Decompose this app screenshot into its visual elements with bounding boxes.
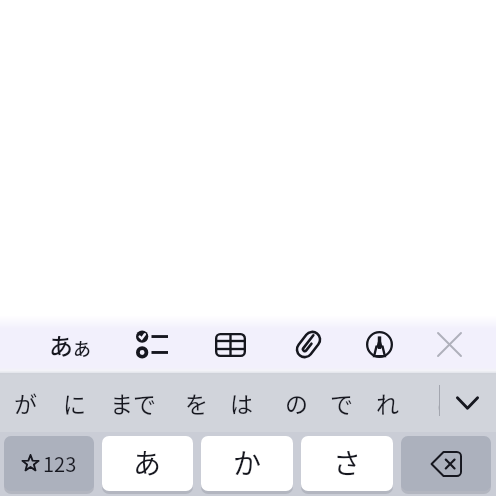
button[interactable]: Attach	[270, 316, 346, 373]
button[interactable]: Backspace	[401, 436, 491, 491]
button[interactable]: で	[321, 373, 361, 432]
button[interactable]: れ	[367, 373, 407, 432]
button[interactable]: Markup	[341, 316, 417, 373]
staticText: を	[185, 386, 208, 419]
button[interactable]: Close	[411, 316, 487, 373]
staticText: に	[63, 386, 86, 419]
button[interactable]: に	[54, 373, 94, 432]
button[interactable]: さ	[301, 436, 393, 491]
button[interactable]: か	[201, 436, 293, 491]
staticText: れ	[376, 386, 399, 419]
staticText: が	[14, 386, 37, 419]
button[interactable]: あ	[102, 436, 193, 491]
button[interactable]: を	[176, 373, 216, 432]
staticText: の	[285, 386, 308, 419]
staticText: 123	[43, 449, 77, 478]
button[interactable]: まで	[105, 373, 161, 432]
button[interactable]: Symbols and numbers	[4, 436, 94, 491]
staticText: か	[233, 442, 262, 483]
button[interactable]: Text format	[32, 316, 108, 373]
button[interactable]: Table	[192, 316, 268, 373]
staticText: まで	[110, 386, 156, 419]
staticText: は	[230, 386, 253, 419]
button[interactable]: More suggestions	[441, 373, 493, 432]
staticText: で	[330, 386, 353, 419]
staticText: に	[436, 386, 439, 419]
button[interactable]: の	[276, 373, 316, 432]
button[interactable]: が	[5, 373, 45, 432]
staticText: あ	[133, 442, 162, 483]
staticText: さ	[333, 442, 362, 483]
button[interactable]: Checklist	[114, 316, 190, 373]
button[interactable]: は	[221, 373, 261, 432]
staticText: あ	[73, 335, 91, 361]
staticText: あ	[49, 327, 73, 362]
